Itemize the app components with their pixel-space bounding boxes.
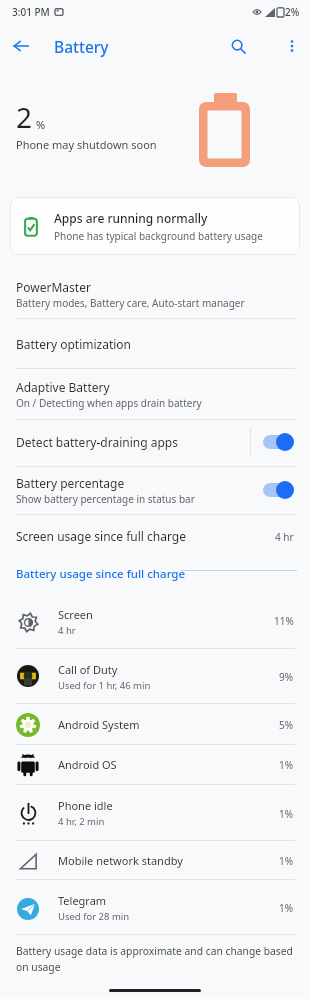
staticText: Mobile network standby [58,853,183,868]
button[interactable]: Call of Duty [0,649,310,703]
staticText: 5% [279,718,294,732]
staticText: Screen [58,607,93,622]
staticText: 1% [279,901,294,915]
staticText: PowerMaster [16,279,91,295]
staticText: Battery [54,36,109,57]
button[interactable]: Mobile network standby [0,841,310,879]
button[interactable]: PowerMaster [0,266,310,318]
button[interactable]: Android OS [0,745,310,784]
staticText: % [36,117,46,132]
staticText: Phone idle [58,798,113,813]
staticText: Apps are running normally [54,210,208,226]
staticText: On / Detecting when apps drain battery [16,396,202,410]
staticText: 2 [16,98,33,136]
staticText: Show battery percentage in status bar [16,492,195,506]
staticText: Battery percentage [16,475,125,491]
staticText: 4 hr [58,624,76,637]
button[interactable]: Battery optimization [0,319,310,368]
staticText: Detect battery-draining apps [16,434,178,450]
staticText: 4 hr [275,530,294,544]
staticText: 1% [279,854,294,868]
staticText: Used for 28 min [58,910,130,923]
staticText: 11% [274,614,294,628]
staticText: Adaptive Battery [16,379,110,395]
button[interactable]: Screen [0,592,310,648]
staticText: 1% [279,807,294,821]
button[interactable]: Search [222,30,254,62]
staticText: 9% [279,670,294,684]
staticText: Battery modes, Battery care, Auto-start … [16,296,245,310]
button[interactable]: Android System [0,704,310,744]
staticText: Screen usage since full charge [16,528,186,544]
staticText: Phone may shutdown soon [16,137,157,152]
button[interactable]: Telegram [0,880,310,934]
button[interactable]: Apps are running normally [10,197,300,255]
button[interactable]: Battery percentage [262,480,294,500]
button[interactable]: More options [276,30,308,62]
staticText: Phone has typical background battery usa… [54,229,263,243]
staticText: Battery usage since full charge [16,566,186,582]
button[interactable]: Detect battery-draining apps [0,420,310,466]
staticText: Call of Duty [58,662,118,677]
button[interactable]: Screen usage since full charge [0,515,310,558]
staticText: 1% [279,758,294,772]
staticText: Battery optimization [16,336,132,352]
staticText: Android OS [58,757,117,772]
staticText: 2% [285,5,300,19]
button[interactable]: Adaptive Battery [0,369,310,419]
staticText: 3:01 PM [12,5,50,19]
staticText: Battery usage data is approximate and ca… [16,944,298,974]
staticText: Telegram [58,893,107,908]
staticText: Used for 1 hr, 46 min [58,679,151,692]
staticText: 4 hr, 2 min [58,815,105,828]
staticText: Android System [58,717,140,732]
button[interactable]: Detect battery-draining apps [262,432,294,452]
button[interactable]: Battery percentage [0,467,310,514]
button[interactable]: Phone idle [0,785,310,840]
button[interactable]: Back [5,30,37,62]
